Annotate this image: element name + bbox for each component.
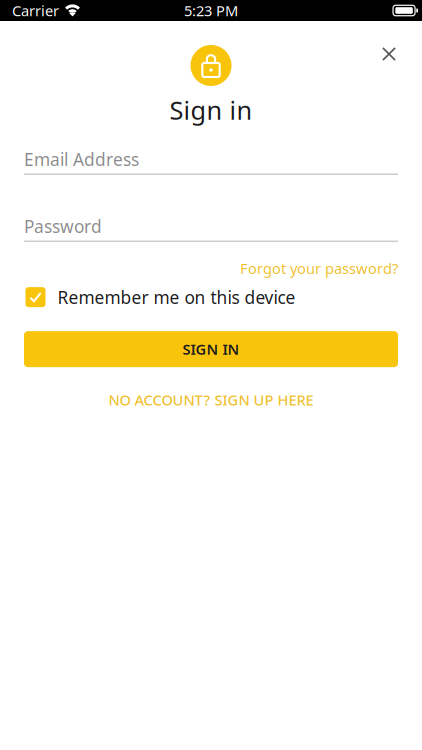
staticText: 5:23 PM <box>184 1 238 20</box>
staticText: Email Address <box>24 148 139 171</box>
button[interactable]: NO ACCOUNT? SIGN UP HERE <box>24 390 398 410</box>
staticText: Remember me on this device <box>57 286 295 309</box>
button[interactable]: Forgot your password? <box>240 259 398 278</box>
staticText: Sign in <box>169 93 252 127</box>
button[interactable]: Remember me on this device <box>24 287 398 307</box>
staticText: Forgot your password? <box>240 259 398 278</box>
button[interactable]: SIGN IN <box>24 331 398 367</box>
staticText: Carrier <box>12 1 59 20</box>
staticText: SIGN IN <box>182 339 239 359</box>
staticText: NO ACCOUNT? SIGN UP HERE <box>108 390 313 410</box>
staticText: Password <box>24 215 102 238</box>
button[interactable]: Close <box>370 35 408 73</box>
